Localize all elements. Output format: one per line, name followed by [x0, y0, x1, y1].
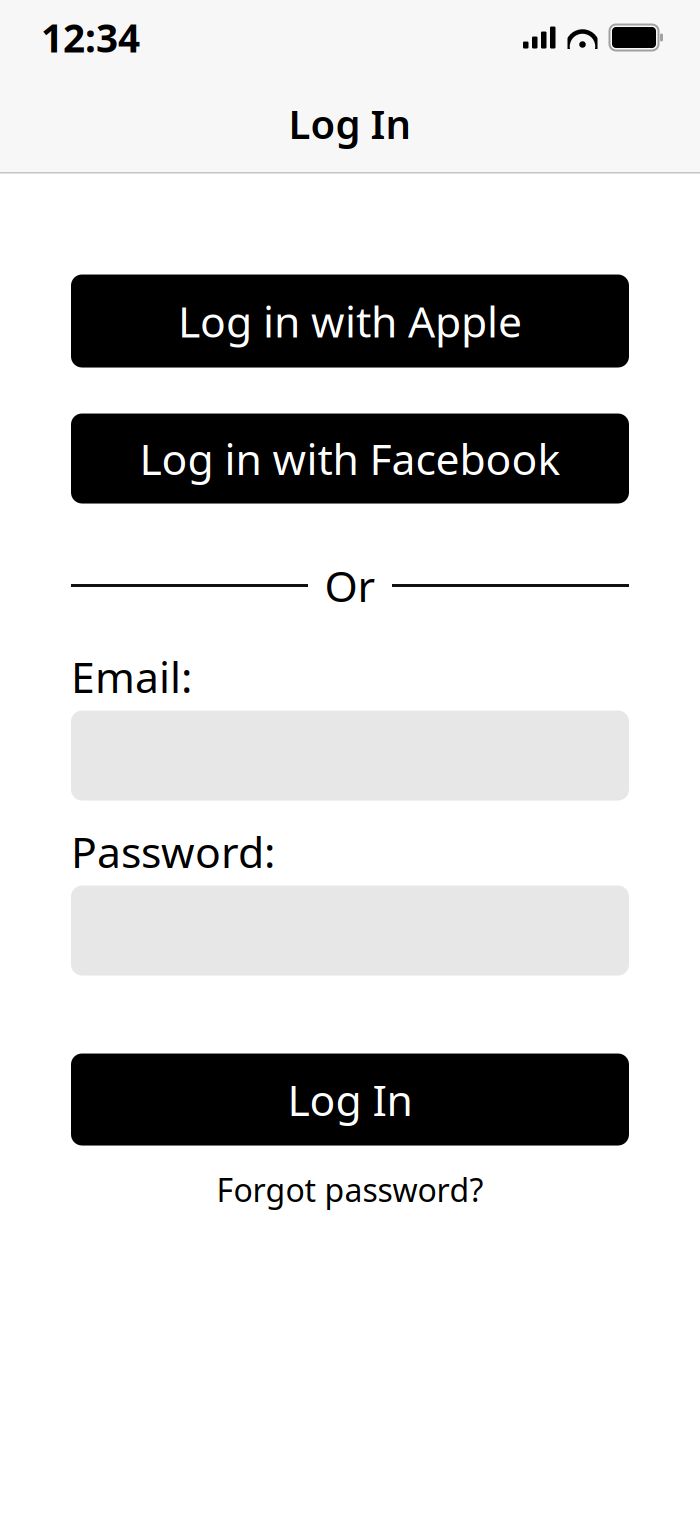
- button[interactable]: Log in with Apple: [71, 274, 629, 367]
- staticText: Or: [324, 557, 375, 614]
- button[interactable]: Log In: [71, 1053, 629, 1145]
- staticText: Forgot password?: [216, 1168, 483, 1211]
- staticText: 12:34: [41, 12, 140, 63]
- staticText: Log in with Apple: [178, 293, 522, 349]
- staticText: Password:: [71, 823, 275, 880]
- staticText: Log In: [287, 1071, 412, 1128]
- button[interactable]: Forgot password?: [71, 1172, 629, 1206]
- staticText: Log In: [288, 97, 411, 150]
- staticText: Log in with Facebook: [139, 430, 560, 487]
- button[interactable]: Log in with Facebook: [71, 413, 629, 503]
- staticText: Email:: [71, 648, 192, 705]
